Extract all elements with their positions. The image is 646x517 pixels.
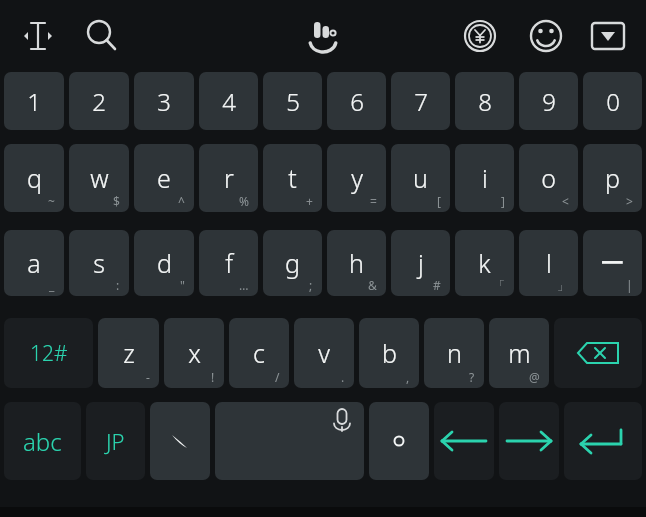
staticText: o	[541, 161, 556, 195]
button[interactable]: q	[4, 144, 64, 212]
button[interactable]: m	[489, 318, 549, 388]
staticText: q	[27, 161, 42, 195]
button[interactable]: 3	[134, 72, 194, 130]
other: Move right	[499, 402, 559, 480]
button[interactable]: i	[455, 144, 514, 212]
staticText: m	[508, 336, 531, 370]
staticText: 0	[606, 85, 620, 118]
staticText: b	[382, 336, 397, 370]
staticText: :	[116, 277, 120, 293]
staticText: …	[239, 277, 249, 293]
staticText: 1	[27, 85, 41, 118]
button[interactable]: f	[199, 230, 258, 296]
staticText: -	[146, 369, 150, 385]
button[interactable]: j	[391, 230, 450, 296]
button[interactable]: Space	[215, 402, 364, 480]
button[interactable]: g	[263, 230, 322, 296]
staticText: n	[447, 336, 462, 370]
button[interactable]: h	[327, 230, 386, 296]
button[interactable]: 2	[69, 72, 129, 130]
button[interactable]: Handwriting	[299, 12, 347, 60]
staticText: 」	[557, 278, 569, 293]
button[interactable]: x	[164, 318, 224, 388]
staticText: <	[562, 193, 569, 209]
staticText: [	[437, 193, 441, 209]
staticText: @	[529, 369, 540, 385]
staticText: k	[478, 246, 491, 280]
staticText: r	[224, 161, 234, 195]
staticText: &	[368, 277, 377, 293]
button[interactable]: d	[134, 230, 194, 296]
button[interactable]: Move left	[434, 402, 494, 480]
button[interactable]: Hide keyboard	[584, 12, 632, 60]
staticText: 6	[350, 85, 364, 118]
button[interactable]: a	[4, 230, 64, 296]
button[interactable]: Emoji	[522, 12, 570, 60]
button[interactable]: 7	[391, 72, 450, 130]
other: Space	[215, 402, 364, 480]
staticText: i	[482, 161, 488, 195]
button[interactable]: y	[327, 144, 386, 212]
button[interactable]: r	[199, 144, 258, 212]
button[interactable]: e	[134, 144, 194, 212]
button[interactable]: 4	[199, 72, 258, 130]
button[interactable]: ー	[583, 230, 642, 296]
staticText: >	[626, 193, 633, 209]
button[interactable]: o	[519, 144, 578, 212]
button[interactable]: t	[263, 144, 322, 212]
button[interactable]: Move right	[499, 402, 559, 480]
button[interactable]: z	[98, 318, 159, 388]
button[interactable]: JP	[86, 402, 145, 480]
button[interactable]: Currency	[456, 12, 504, 60]
button[interactable]	[150, 402, 210, 480]
button[interactable]: 6	[327, 72, 386, 130]
staticText: +	[306, 193, 313, 209]
button[interactable]: b	[359, 318, 419, 388]
button[interactable]: v	[294, 318, 354, 388]
button[interactable]: s	[69, 230, 129, 296]
button[interactable]: 9	[519, 72, 578, 130]
staticText: 2	[92, 85, 106, 118]
button[interactable]: w	[69, 144, 129, 212]
button[interactable]: l	[519, 230, 578, 296]
staticText: JP	[106, 426, 125, 456]
other: Move left	[434, 402, 494, 480]
button[interactable]: p	[583, 144, 642, 212]
button[interactable]: 12#	[4, 318, 93, 388]
button[interactable]: u	[391, 144, 450, 212]
staticText: ー	[600, 248, 625, 279]
staticText: f	[225, 246, 233, 280]
staticText: 5	[286, 85, 300, 118]
staticText: %	[239, 193, 249, 209]
staticText: !	[211, 369, 215, 385]
button[interactable]: abc	[4, 402, 81, 480]
staticText: 4	[222, 85, 236, 118]
staticText: z	[123, 336, 135, 370]
staticText: "	[180, 277, 185, 293]
button[interactable]: Enter	[564, 402, 642, 480]
other: Enter	[564, 402, 642, 480]
staticText: a	[27, 246, 41, 280]
staticText: 9	[542, 85, 556, 118]
button[interactable]: Search	[78, 12, 126, 60]
button[interactable]: 0	[583, 72, 642, 130]
button[interactable]: k	[455, 230, 514, 296]
staticText: 8	[478, 85, 492, 118]
button[interactable]: Backspace	[554, 318, 642, 388]
staticText: 「	[493, 278, 505, 293]
staticText: =	[370, 193, 377, 209]
button[interactable]: 8	[455, 72, 514, 130]
staticText: v	[318, 336, 330, 370]
staticText: ;	[309, 277, 313, 293]
staticText: x	[188, 336, 201, 370]
other: Backspace	[554, 318, 642, 388]
button[interactable]: Cursor control	[14, 12, 62, 60]
button[interactable]: c	[229, 318, 289, 388]
staticText: ?	[469, 369, 475, 385]
button[interactable]: 5	[263, 72, 322, 130]
button[interactable]: n	[424, 318, 484, 388]
staticText: h	[349, 246, 364, 280]
button[interactable]: 1	[4, 72, 64, 130]
staticText: u	[413, 161, 428, 195]
button[interactable]	[369, 402, 429, 480]
